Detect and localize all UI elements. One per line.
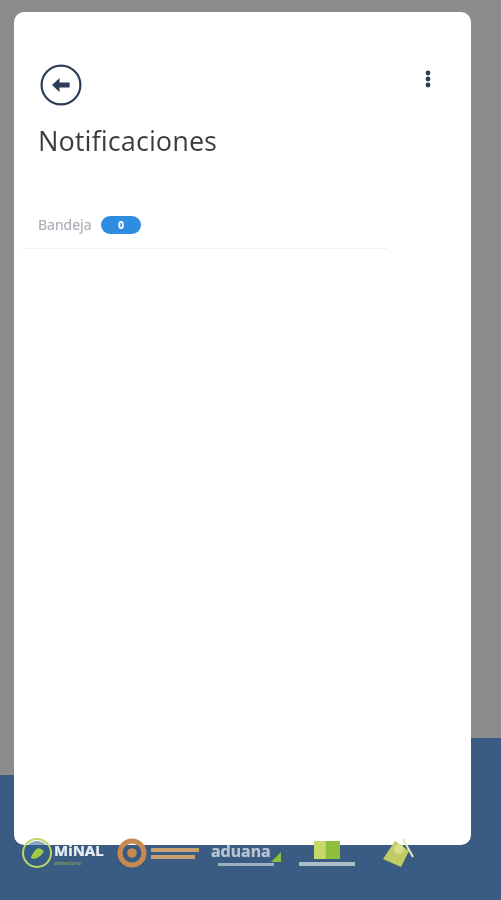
button[interactable]: MINAL <box>22 836 104 870</box>
button[interactable]: Back <box>38 62 84 108</box>
button[interactable]: Emblem <box>375 834 419 872</box>
staticText: 0 <box>118 218 124 232</box>
button[interactable]: Institution logo <box>299 841 355 866</box>
button[interactable]: Bandeja <box>36 211 143 238</box>
staticText: alimentaria <box>54 860 81 867</box>
staticText: MiNAL <box>54 840 104 860</box>
button[interactable]: More options <box>411 62 445 96</box>
staticText: Bandeja <box>38 215 92 234</box>
button[interactable]: Ministerio logo <box>118 836 199 870</box>
staticText: aduana <box>211 840 271 862</box>
button[interactable]: Aduana logo <box>211 840 281 866</box>
staticText: Notificaciones <box>38 122 218 159</box>
